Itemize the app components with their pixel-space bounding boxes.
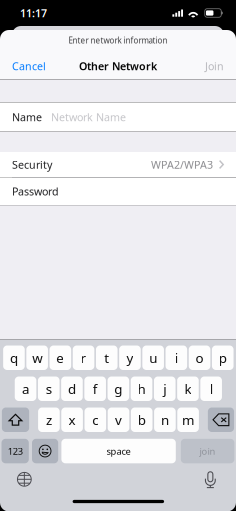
button[interactable]: a xyxy=(15,376,36,401)
button[interactable]: Security xyxy=(0,152,236,177)
staticText: s xyxy=(46,380,52,398)
button[interactable]: t xyxy=(96,345,118,370)
button[interactable]: Join xyxy=(193,54,236,78)
button[interactable]: y xyxy=(119,345,141,370)
button[interactable]: k xyxy=(177,376,199,401)
button[interactable]: w xyxy=(26,345,48,370)
button[interactable]: e xyxy=(50,345,71,370)
staticText: join xyxy=(200,445,216,457)
button[interactable]: Next keyboard xyxy=(11,468,37,490)
button[interactable]: r xyxy=(73,345,94,370)
staticText: i xyxy=(175,349,178,367)
button[interactable]: Dictation xyxy=(197,468,223,490)
button[interactable]: join xyxy=(181,439,234,463)
staticText: m xyxy=(182,411,194,429)
button[interactable]: z xyxy=(38,407,60,432)
button[interactable]: v xyxy=(108,407,129,432)
button[interactable]: o xyxy=(189,345,210,370)
staticText: l xyxy=(210,380,213,398)
button[interactable]: s xyxy=(38,376,60,401)
staticText: Other Network xyxy=(79,59,157,73)
staticText: e xyxy=(56,349,64,367)
staticText: k xyxy=(184,380,191,398)
button[interactable]: 123 xyxy=(1,439,29,463)
staticText: Password xyxy=(12,184,59,199)
button[interactable]: g xyxy=(108,376,129,401)
staticText: z xyxy=(46,411,52,429)
staticText: t xyxy=(104,349,109,367)
staticText: space xyxy=(107,445,131,457)
button[interactable]: l xyxy=(200,376,222,401)
button[interactable]: j xyxy=(154,376,176,401)
staticText: y xyxy=(126,349,133,367)
staticText: h xyxy=(138,380,146,398)
staticText: 11:17 xyxy=(20,6,47,20)
staticText: q xyxy=(10,349,18,367)
button[interactable]: i xyxy=(166,345,187,370)
staticText: Name xyxy=(12,110,42,124)
button[interactable]: Shift xyxy=(2,407,29,432)
staticText: Cancel xyxy=(12,59,46,73)
button[interactable]: Cancel xyxy=(0,54,58,78)
staticText: WPA2/WPA3 xyxy=(151,157,213,172)
staticText: a xyxy=(22,380,29,398)
staticText: Join xyxy=(205,59,224,73)
button[interactable]: n xyxy=(154,407,176,432)
button[interactable]: u xyxy=(142,345,164,370)
staticText: c xyxy=(92,411,98,429)
staticText: f xyxy=(93,380,98,398)
staticText: Enter network information xyxy=(68,35,167,46)
staticText: g xyxy=(114,380,122,398)
staticText: r xyxy=(81,349,87,367)
staticText: b xyxy=(138,411,146,429)
button[interactable]: c xyxy=(84,407,106,432)
staticText: p xyxy=(219,349,227,367)
button[interactable]: Emoji xyxy=(32,439,58,463)
button[interactable]: d xyxy=(61,376,83,401)
staticText: 123 xyxy=(8,445,23,457)
staticText: d xyxy=(68,380,76,398)
button[interactable]: q xyxy=(3,345,25,370)
staticText: v xyxy=(115,411,122,429)
button[interactable]: f xyxy=(84,376,106,401)
staticText: n xyxy=(161,411,169,429)
staticText: Network Name xyxy=(51,110,126,124)
button[interactable]: space xyxy=(61,439,176,463)
staticText: w xyxy=(32,349,42,367)
staticText: j xyxy=(163,380,166,398)
button[interactable]: x xyxy=(61,407,83,432)
staticText: Security xyxy=(12,157,52,172)
staticText: o xyxy=(196,349,204,367)
staticText: x xyxy=(69,411,76,429)
button[interactable]: Delete xyxy=(208,407,234,432)
button[interactable]: b xyxy=(131,407,152,432)
button[interactable]: m xyxy=(177,407,199,432)
staticText: u xyxy=(149,349,157,367)
button[interactable]: h xyxy=(131,376,152,401)
button[interactable]: p xyxy=(212,345,234,370)
